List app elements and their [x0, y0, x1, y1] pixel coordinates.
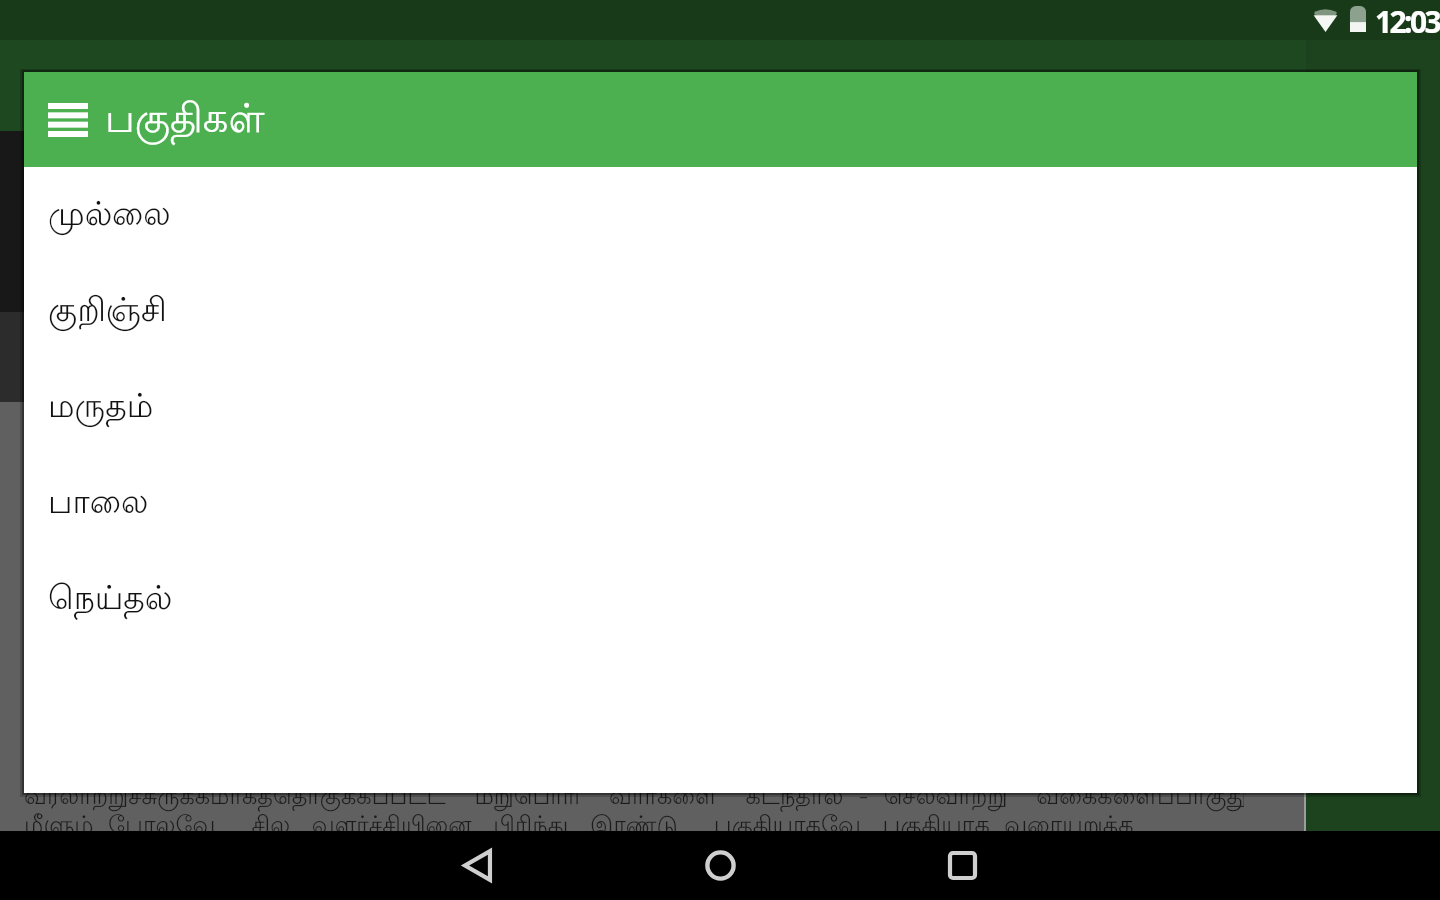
staticText: பாலை	[48, 485, 149, 525]
button[interactable]: Back	[417, 831, 537, 900]
button[interactable]: Open navigation menu	[48, 92, 88, 148]
button[interactable]: மருதம்	[24, 359, 1417, 455]
staticText: பகுதிகள்	[105, 98, 265, 147]
button[interactable]: பாலை	[24, 455, 1417, 551]
button[interactable]: Home	[660, 831, 780, 900]
staticText: மருதம்	[48, 389, 154, 429]
staticText: 12:03	[1375, 1, 1440, 41]
staticText: வரலாற்றுச்சுருக்கமாகத்தொகுக்கப்பட்ட மறுப…	[24, 784, 1244, 813]
button[interactable]: குறிஞ்சி	[24, 263, 1417, 359]
staticText: மீளும் போலவே சில வளர்ச்சியினை பிரிந்து இ…	[24, 813, 1244, 842]
staticText: நெய்தல்	[48, 581, 173, 621]
staticText: முல்லை	[48, 197, 171, 237]
button[interactable]: முல்லை	[24, 167, 1417, 263]
button[interactable]: நெய்தல்	[24, 551, 1417, 647]
button[interactable]: Recent apps	[902, 831, 1022, 900]
staticText: குறிஞ்சி	[48, 293, 167, 333]
